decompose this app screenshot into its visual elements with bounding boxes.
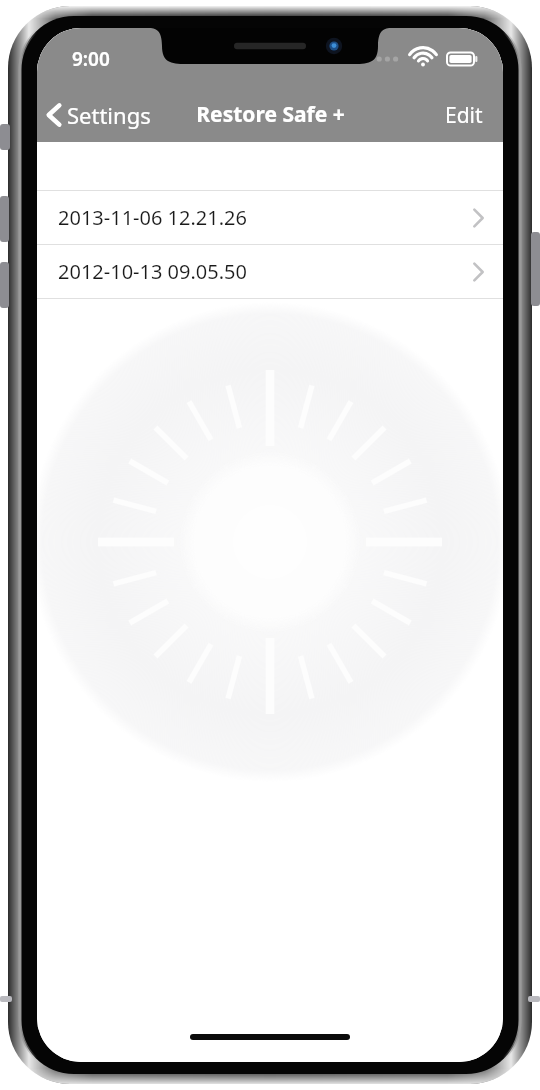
staticText: Restore Safe + xyxy=(196,100,345,129)
button[interactable]: Settings xyxy=(37,88,161,142)
staticText: 2013-11-06 12.21.26 xyxy=(58,204,472,231)
button[interactable]: Edit xyxy=(425,88,503,142)
button[interactable]: 2012-10-13 09.05.50 xyxy=(37,245,503,298)
button[interactable]: 2013-11-06 12.21.26 xyxy=(37,191,503,244)
staticText: Edit xyxy=(445,101,483,130)
staticText: 2012-10-13 09.05.50 xyxy=(58,258,472,285)
staticText: 9:00 xyxy=(72,46,110,72)
staticText: Settings xyxy=(67,100,151,130)
